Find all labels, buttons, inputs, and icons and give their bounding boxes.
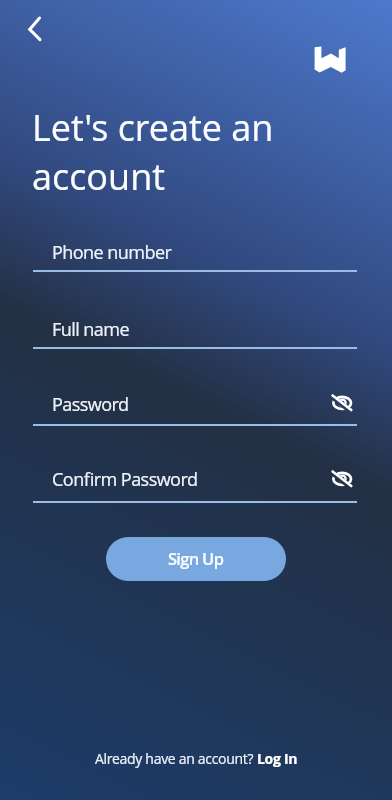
button[interactable]: Sign Up [106, 537, 286, 581]
staticText: Full name [52, 317, 130, 342]
staticText: Confirm Password [52, 467, 198, 492]
button[interactable] [329, 389, 355, 415]
staticText: Password [52, 392, 129, 417]
button[interactable] [329, 465, 355, 491]
staticText: Let's create an account [32, 103, 274, 201]
button[interactable]: Already have an account? [95, 749, 298, 768]
staticText: Already have an account? [95, 749, 257, 768]
staticText: Phone number [52, 240, 172, 265]
staticText: Sign Up [168, 547, 224, 569]
button[interactable] [22, 10, 58, 46]
staticText: Log In [257, 749, 298, 768]
